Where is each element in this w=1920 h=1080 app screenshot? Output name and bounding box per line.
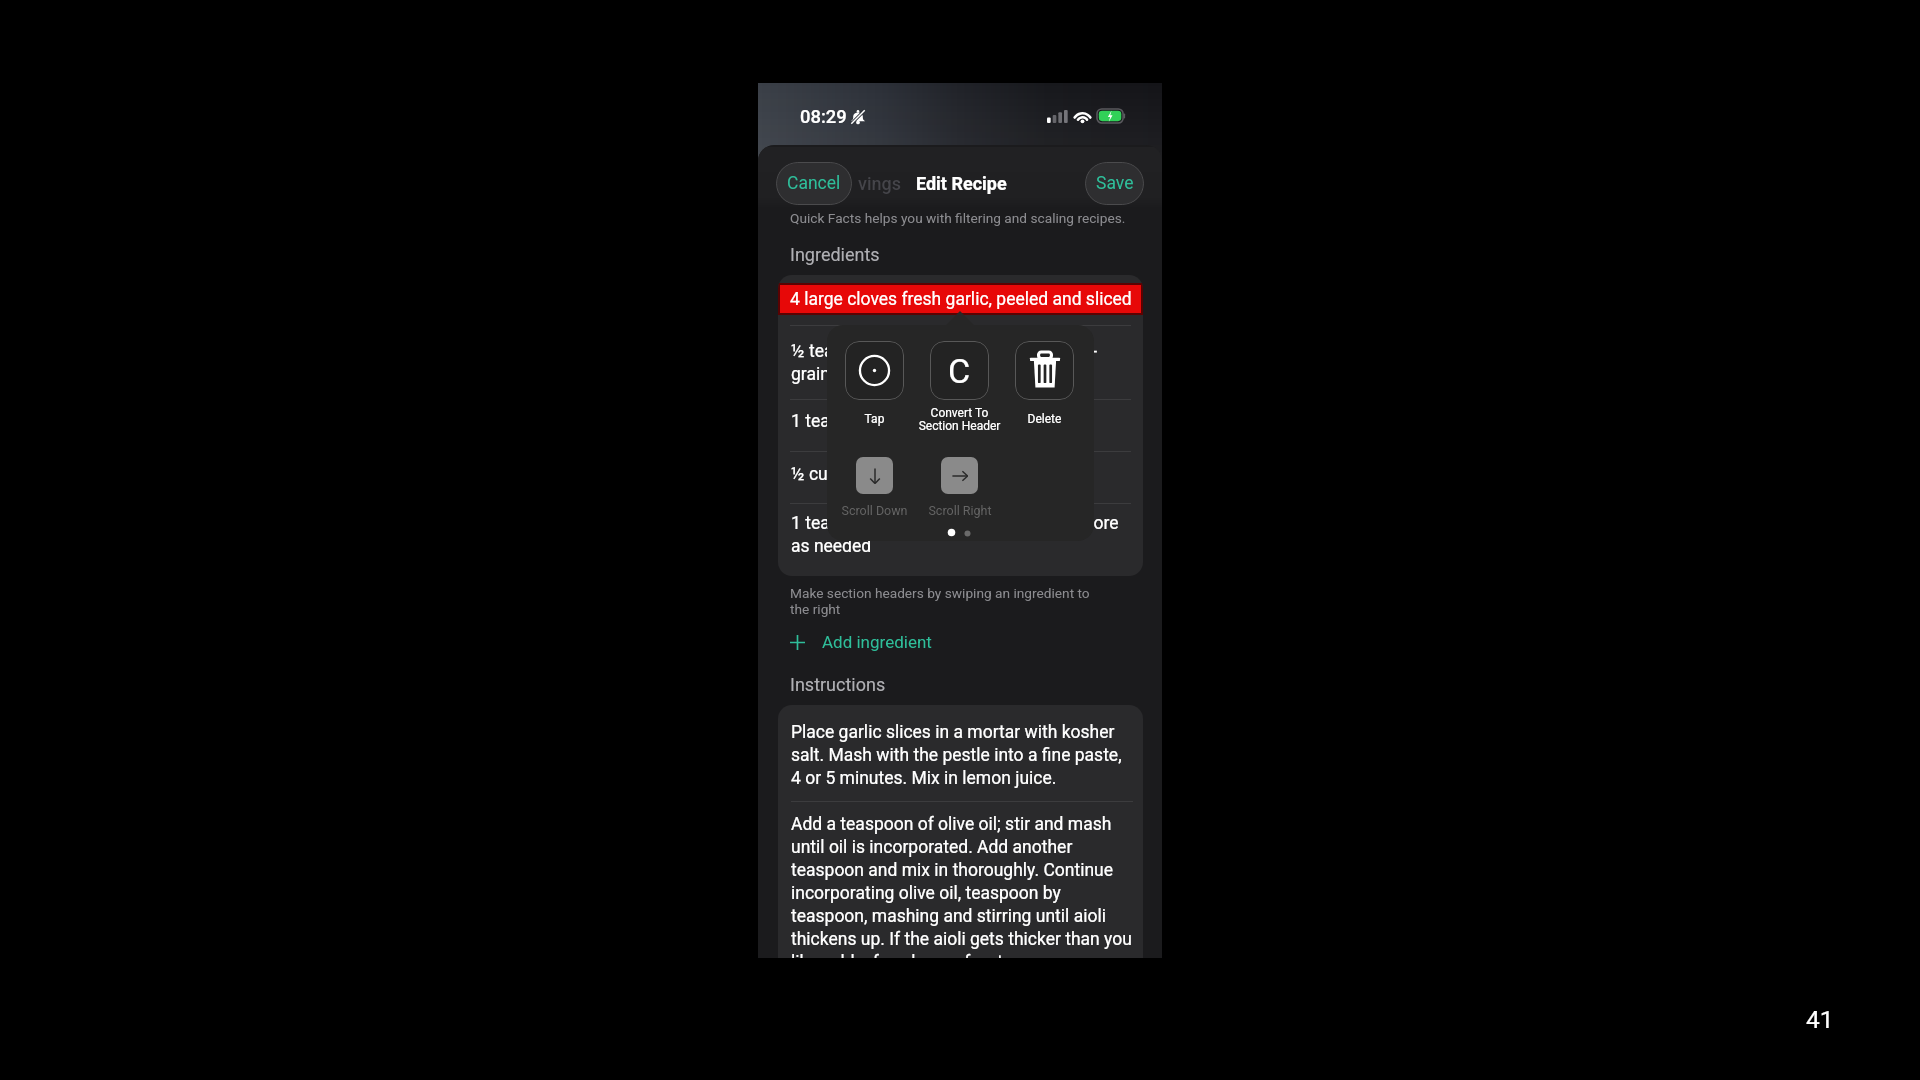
staticText: 1 teaspoon water, or as needed, plus mor… (791, 513, 1119, 556)
staticText: Scroll Down (841, 503, 908, 518)
button[interactable]: Scroll Down (832, 457, 917, 518)
button[interactable]: Tap (832, 341, 917, 433)
staticText: vings (858, 173, 902, 194)
staticText: ½ cup olive oil (791, 464, 901, 485)
staticText: Edit Recipe (916, 173, 1007, 194)
button[interactable]: Delete (1002, 341, 1087, 433)
staticText: Convert To Section Header (917, 406, 1002, 433)
staticText: Add ingredient (822, 632, 932, 652)
staticText: 4 large cloves fresh garlic, peeled and … (790, 289, 1132, 310)
button[interactable]: Save (1085, 162, 1144, 205)
staticText: Cancel (787, 173, 841, 194)
staticText: Delete (1002, 412, 1087, 426)
staticText: Instructions (790, 674, 886, 695)
staticText: Ingredients (790, 244, 880, 265)
button[interactable]: Cancel (776, 162, 852, 205)
staticText: 1 teaspoon lemon juice (791, 411, 972, 432)
staticText: Scroll Right (928, 503, 992, 518)
staticText: Place garlic slices in a mortar with kos… (791, 722, 1133, 788)
staticText: Quick Facts helps you with filtering and… (790, 210, 1126, 226)
button[interactable]: Add ingredient (790, 632, 932, 652)
staticText: 08:29 (800, 106, 847, 128)
staticText: Tap (832, 412, 917, 426)
button[interactable]: Convert To Section Header (917, 341, 1002, 433)
staticText: 41 (1806, 1005, 1834, 1034)
button[interactable]: Scroll Right (917, 457, 1002, 518)
staticText: Make section headers by swiping an ingre… (790, 585, 1090, 617)
staticText: ½ teaspoon kosher salt, slightly coarse-… (791, 341, 1098, 384)
staticText: Add a teaspoon of olive oil; stir and ma… (791, 814, 1133, 958)
staticText: C (948, 351, 971, 391)
staticText: Save (1096, 173, 1134, 194)
